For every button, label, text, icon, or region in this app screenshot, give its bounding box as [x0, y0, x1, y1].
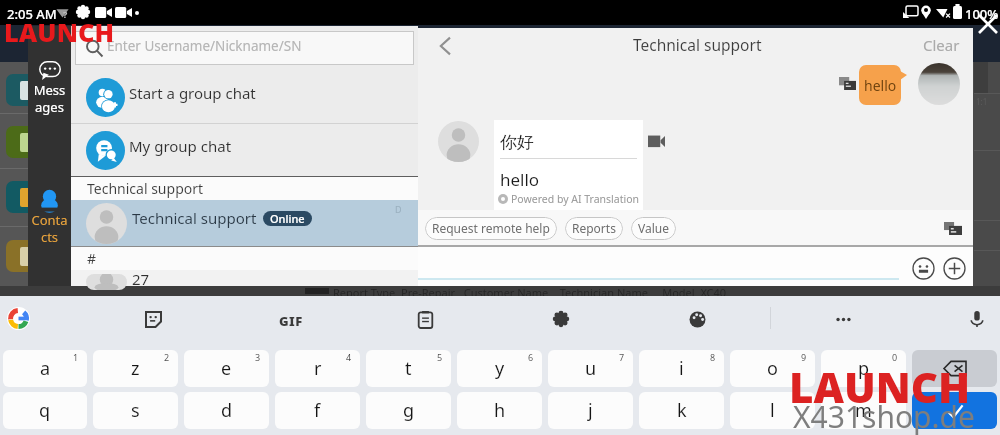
- staticText: s: [131, 398, 140, 423]
- staticText: 0: [892, 351, 898, 363]
- staticText: D: [395, 203, 402, 215]
- staticText: Value: [638, 220, 669, 236]
- staticText: 27: [132, 269, 150, 285]
- staticText: Report Type Pre-Repair Customer Name Tec…: [333, 285, 727, 300]
- button[interactable]: p: [821, 350, 906, 387]
- staticText: 1:1: [976, 96, 988, 107]
- button[interactable]: z: [93, 350, 178, 387]
- button[interactable]: r: [275, 350, 360, 387]
- button[interactable]: Request remote help: [425, 217, 557, 240]
- staticText: 2:05 AM: [7, 5, 57, 23]
- button[interactable]: Enter Username/Nickname/SN: [75, 31, 414, 65]
- button[interactable]: t: [366, 350, 451, 387]
- button[interactable]: Emoji: [911, 256, 936, 281]
- staticText: X431shop.de: [793, 396, 975, 435]
- button[interactable]: a: [3, 350, 87, 387]
- staticText: 3: [255, 351, 261, 363]
- staticText: t: [405, 356, 412, 381]
- button[interactable]: Back: [428, 28, 464, 63]
- staticText: 你好: [500, 132, 534, 153]
- button[interactable]: GIF: [275, 308, 307, 334]
- staticText: 8: [710, 351, 716, 363]
- button[interactable]: Backspace: [912, 350, 997, 387]
- button[interactable]: Keyboard tool: [547, 305, 575, 333]
- staticText: 6: [528, 351, 534, 363]
- staticText: Request remote help: [432, 220, 550, 236]
- button[interactable]: Contacts: [28, 185, 71, 255]
- staticText: k: [677, 398, 687, 423]
- staticText: LAUNCH: [789, 358, 971, 415]
- button[interactable]: hello: [859, 65, 901, 105]
- button[interactable]: Value: [631, 217, 676, 240]
- staticText: ?: [63, 8, 68, 20]
- button[interactable]: Keyboard tool: [683, 305, 711, 333]
- staticText: Technical support: [633, 34, 762, 55]
- button[interactable]: j: [548, 392, 633, 429]
- staticText: r: [314, 356, 322, 381]
- staticText: y: [495, 356, 505, 381]
- staticText: Online: [270, 211, 305, 226]
- staticText: j: [588, 398, 593, 423]
- button[interactable]: d: [184, 392, 269, 429]
- button[interactable]: Technical support: [71, 200, 418, 246]
- staticText: g: [403, 398, 415, 423]
- button[interactable]: 27: [71, 270, 418, 286]
- staticText: o: [767, 356, 778, 381]
- button[interactable]: h: [457, 392, 542, 429]
- button[interactable]: Clear: [910, 30, 973, 62]
- button[interactable]: Keyboard tool: [139, 305, 167, 333]
- button[interactable]: Reports: [565, 217, 623, 240]
- staticText: q: [39, 398, 51, 423]
- staticText: 2: [164, 351, 170, 363]
- staticText: Technical support: [87, 179, 204, 198]
- button[interactable]: Start a group chat: [71, 71, 418, 123]
- staticText: LAUNCH: [4, 15, 115, 50]
- staticText: u: [585, 356, 597, 381]
- staticText: 100%: [965, 5, 999, 23]
- button[interactable]: Keyboard tool: [963, 305, 991, 333]
- button[interactable]: l: [730, 392, 815, 429]
- button[interactable]: Keyboard tool: [829, 305, 857, 333]
- button[interactable]: f: [275, 392, 360, 429]
- staticText: d: [221, 398, 233, 423]
- staticText: 7: [619, 351, 625, 363]
- button[interactable]: Messages: [28, 56, 71, 126]
- staticText: 4: [346, 351, 352, 363]
- button[interactable]: o: [730, 350, 815, 387]
- button[interactable]: Add attachment: [942, 256, 967, 281]
- staticText: a: [40, 356, 51, 381]
- staticText: GIF: [279, 312, 303, 330]
- button[interactable]: i: [639, 350, 724, 387]
- button[interactable]: Enter: [912, 392, 997, 429]
- button[interactable]: u: [548, 350, 633, 387]
- button[interactable]: Keyboard tool: [411, 305, 439, 333]
- button[interactable]: m: [821, 392, 906, 429]
- staticText: Technical support: [132, 208, 257, 228]
- staticText: Reports: [572, 220, 616, 236]
- staticText: hello: [864, 76, 897, 95]
- staticText: 9: [801, 351, 807, 363]
- button[interactable]: y: [457, 350, 542, 387]
- staticText: #: [87, 249, 97, 268]
- staticText: Messages: [31, 81, 68, 116]
- staticText: l: [770, 398, 775, 423]
- button[interactable]: s: [93, 392, 178, 429]
- staticText: p: [858, 356, 870, 381]
- staticText: hello: [500, 168, 540, 191]
- staticText: Clear: [923, 35, 960, 55]
- staticText: Contacts: [31, 211, 68, 246]
- button[interactable]: q: [3, 392, 87, 429]
- button[interactable]: Close: [975, 11, 1000, 37]
- staticText: e: [221, 356, 232, 381]
- staticText: m: [855, 398, 872, 423]
- button[interactable]: k: [639, 392, 724, 429]
- button[interactable]: g: [366, 392, 451, 429]
- button[interactable]: My group chat: [71, 124, 418, 176]
- staticText: 5: [437, 351, 443, 363]
- staticText: Enter Username/Nickname/SN: [107, 37, 302, 55]
- staticText: h: [494, 398, 506, 423]
- button[interactable]: e: [184, 350, 269, 387]
- staticText: 1: [73, 351, 79, 363]
- button[interactable]: Google: [6, 306, 30, 330]
- staticText: My group chat: [129, 136, 232, 156]
